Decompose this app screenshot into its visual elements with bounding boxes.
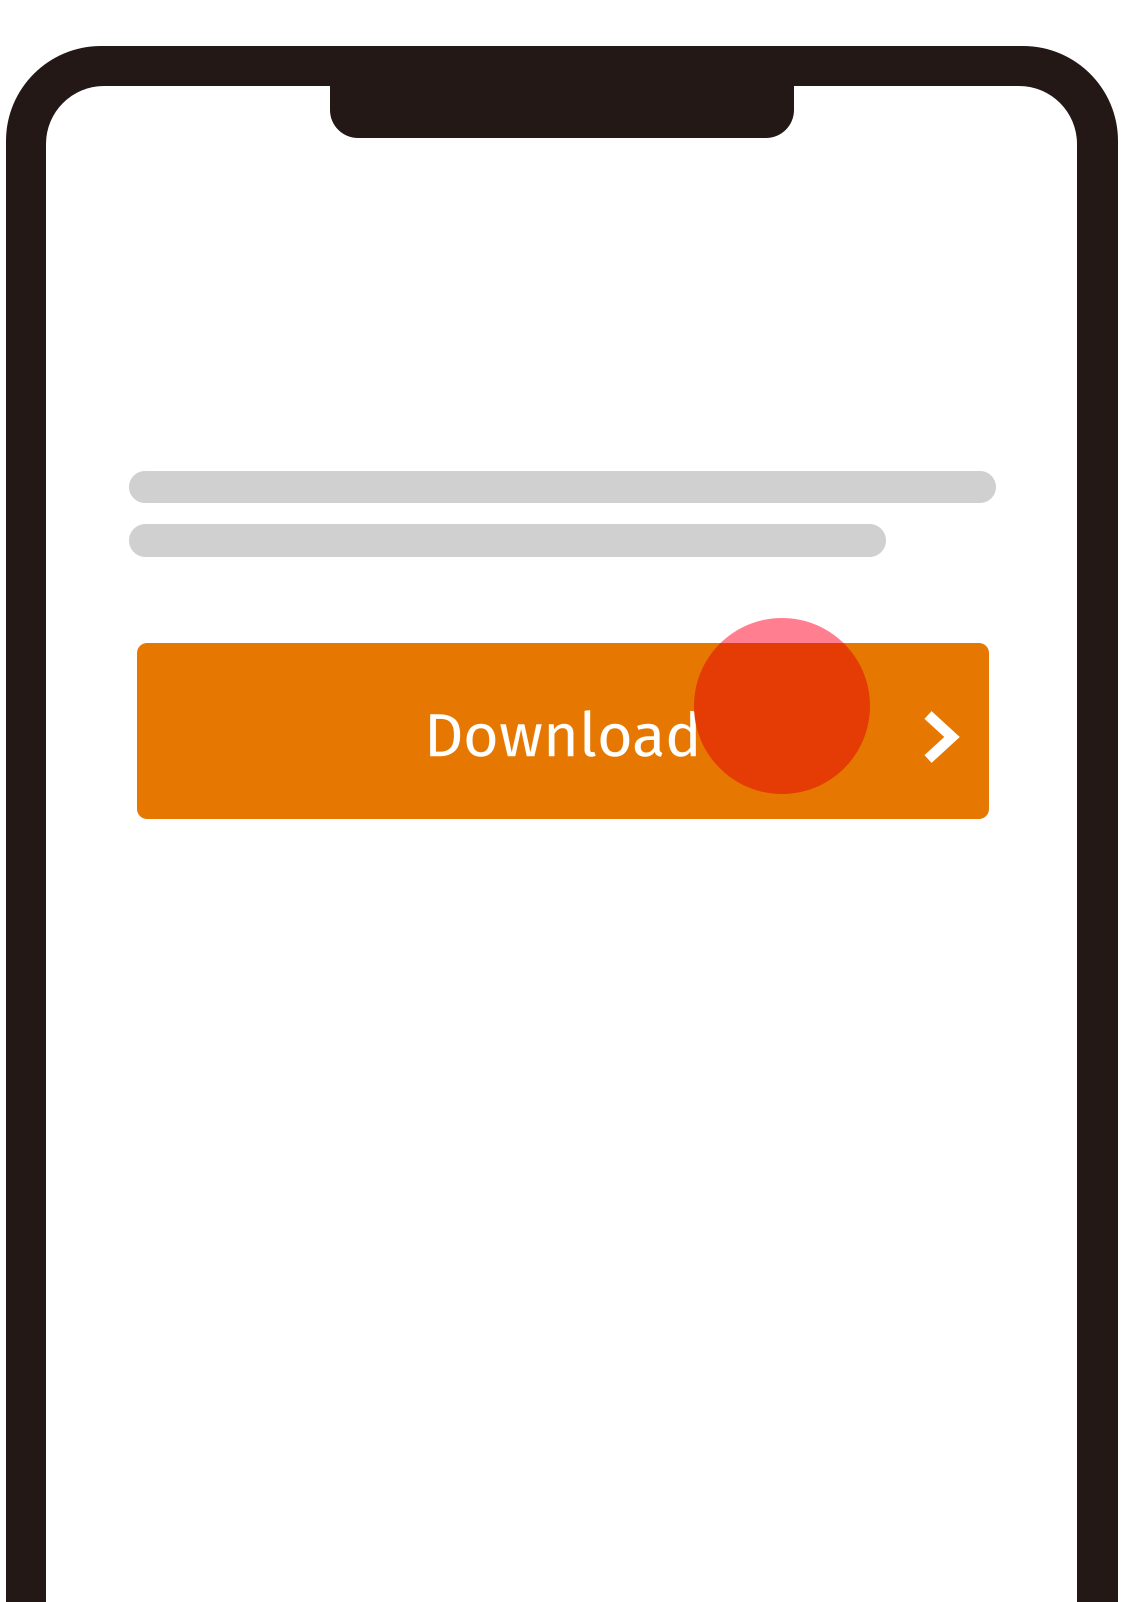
button[interactable]: Download [137, 643, 989, 819]
staticText: Download [424, 699, 702, 773]
